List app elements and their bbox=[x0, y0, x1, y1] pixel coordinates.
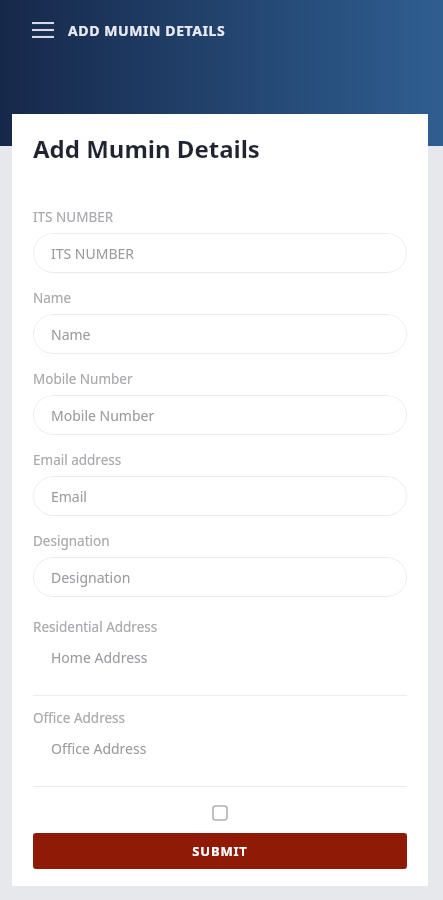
staticText: Office Address bbox=[51, 739, 147, 758]
staticText: Designation bbox=[51, 568, 131, 587]
button[interactable]: Agree checkbox bbox=[207, 800, 233, 826]
staticText: Email bbox=[51, 487, 87, 506]
staticText: Designation bbox=[33, 532, 110, 550]
button[interactable]: Office Address bbox=[33, 739, 407, 758]
staticText: Email address bbox=[33, 451, 122, 469]
button[interactable]: SUBMIT bbox=[33, 833, 407, 869]
staticText: ITS NUMBER bbox=[33, 208, 114, 226]
staticText: Office Address bbox=[33, 709, 126, 727]
staticText: Name bbox=[33, 289, 72, 307]
staticText: ADD MUMIN DETAILS bbox=[68, 21, 226, 40]
button[interactable]: Menu bbox=[26, 13, 60, 47]
button[interactable]: ITS NUMBER bbox=[33, 233, 407, 273]
staticText: Name bbox=[51, 325, 91, 344]
button[interactable]: Designation bbox=[33, 557, 407, 597]
button[interactable]: Mobile Number bbox=[33, 395, 407, 435]
button[interactable]: Email bbox=[33, 476, 407, 516]
staticText: Residential Address bbox=[33, 618, 158, 636]
staticText: ITS NUMBER bbox=[51, 244, 135, 263]
staticText: SUBMIT bbox=[192, 842, 248, 860]
button[interactable]: Home Address bbox=[33, 648, 407, 667]
staticText: Add Mumin Details bbox=[33, 132, 260, 165]
button[interactable]: Name bbox=[33, 314, 407, 354]
staticText: Mobile Number bbox=[51, 406, 155, 425]
staticText: Home Address bbox=[51, 648, 148, 667]
staticText: Mobile Number bbox=[33, 370, 133, 388]
